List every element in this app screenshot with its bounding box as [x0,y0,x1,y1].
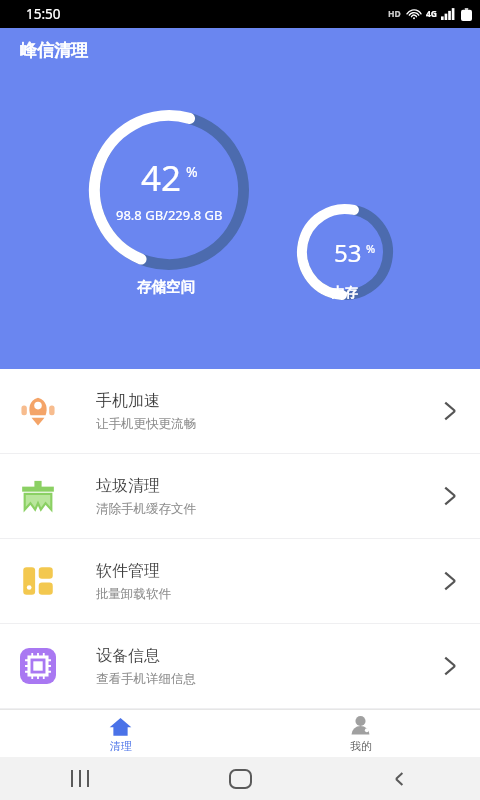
staticText: 软件管理 [96,561,160,581]
button[interactable]: 我的 [240,710,480,757]
button[interactable]: Home [160,757,320,800]
staticText: 批量卸载软件 [96,586,171,602]
staticText: 清理 [110,739,132,753]
staticText: 清除手机缓存文件 [96,501,196,517]
staticText: % [186,162,198,181]
staticText: HD [388,8,401,20]
staticText: % [366,241,376,256]
staticText: 我的 [350,739,372,753]
other: 清理 [109,715,132,738]
other: 我的 [349,715,372,738]
staticText: 53 [334,236,362,269]
staticText: 手机加速 [96,391,160,411]
staticText: 峰信清理 [20,40,88,61]
staticText: 15:50 [26,5,61,23]
button[interactable]: Back [320,757,480,800]
staticText: 查看手机详细信息 [96,671,196,687]
staticText: 内存 [331,284,358,301]
button[interactable]: 清理 [0,710,240,757]
staticText: 让手机更快更流畅 [96,416,196,432]
staticText: 42 [141,154,182,202]
staticText: 98.8 GB/229.8 GB [116,206,223,224]
staticText: 4G [426,8,438,20]
button[interactable]: Recents [0,757,160,800]
staticText: 垃圾清理 [96,476,160,496]
button[interactable]: 垃圾清理 [0,454,480,538]
staticText: 存储空间 [137,278,195,296]
button[interactable]: 软件管理 [0,539,480,623]
button[interactable]: 手机加速 [0,369,480,453]
button[interactable]: 设备信息 [0,624,480,708]
staticText: 设备信息 [96,646,160,666]
